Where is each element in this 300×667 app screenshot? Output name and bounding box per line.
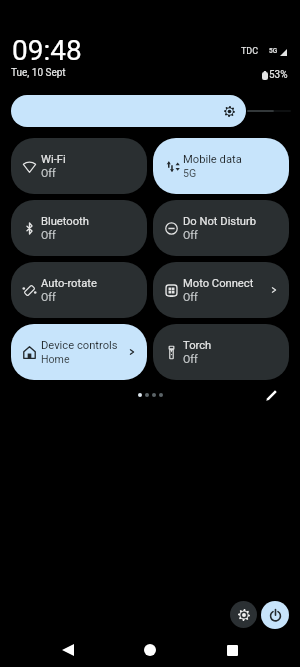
button[interactable]: Bluetooth [11, 200, 147, 256]
button[interactable]: Wi-Fi [11, 138, 147, 194]
staticText: Off [183, 229, 198, 241]
staticText: 53% [269, 69, 288, 81]
staticText: Off [41, 229, 56, 241]
button[interactable]: Edit tiles [261, 386, 281, 404]
staticText: Do Not Disturb [183, 215, 257, 228]
staticText: Tue, 10 Sept [11, 67, 66, 79]
staticText: Mobile data [183, 153, 242, 166]
staticText: Off [183, 291, 198, 303]
staticText: 09:48 [12, 34, 82, 67]
button[interactable]: Device controls [11, 324, 147, 380]
staticText: Off [41, 291, 56, 303]
staticText: Wi-Fi [41, 153, 66, 166]
button[interactable]: Brightness [11, 95, 246, 127]
button[interactable]: Recent apps [212, 633, 252, 667]
staticText: Auto-rotate [41, 277, 97, 290]
button[interactable]: Auto-rotate [11, 262, 147, 318]
button[interactable]: Do Not Disturb [153, 200, 289, 256]
staticText: Home [41, 353, 70, 365]
button[interactable]: Home [130, 633, 170, 667]
staticText: TDC [241, 46, 259, 57]
staticText: Bluetooth [41, 215, 89, 228]
staticText: Off [183, 353, 198, 365]
staticText: Moto Connect [183, 277, 254, 290]
staticText: 5G [183, 167, 197, 179]
button[interactable]: Power [261, 601, 289, 629]
staticText: 5G [269, 47, 278, 55]
button[interactable]: Moto Connect [153, 262, 289, 318]
button[interactable]: Torch [153, 324, 289, 380]
staticText: Off [41, 167, 56, 179]
button[interactable]: Settings [230, 601, 257, 628]
staticText: Torch [183, 339, 212, 352]
staticText: Device controls [41, 339, 118, 352]
button[interactable]: Mobile data [153, 138, 289, 194]
button[interactable]: Back [48, 633, 88, 667]
